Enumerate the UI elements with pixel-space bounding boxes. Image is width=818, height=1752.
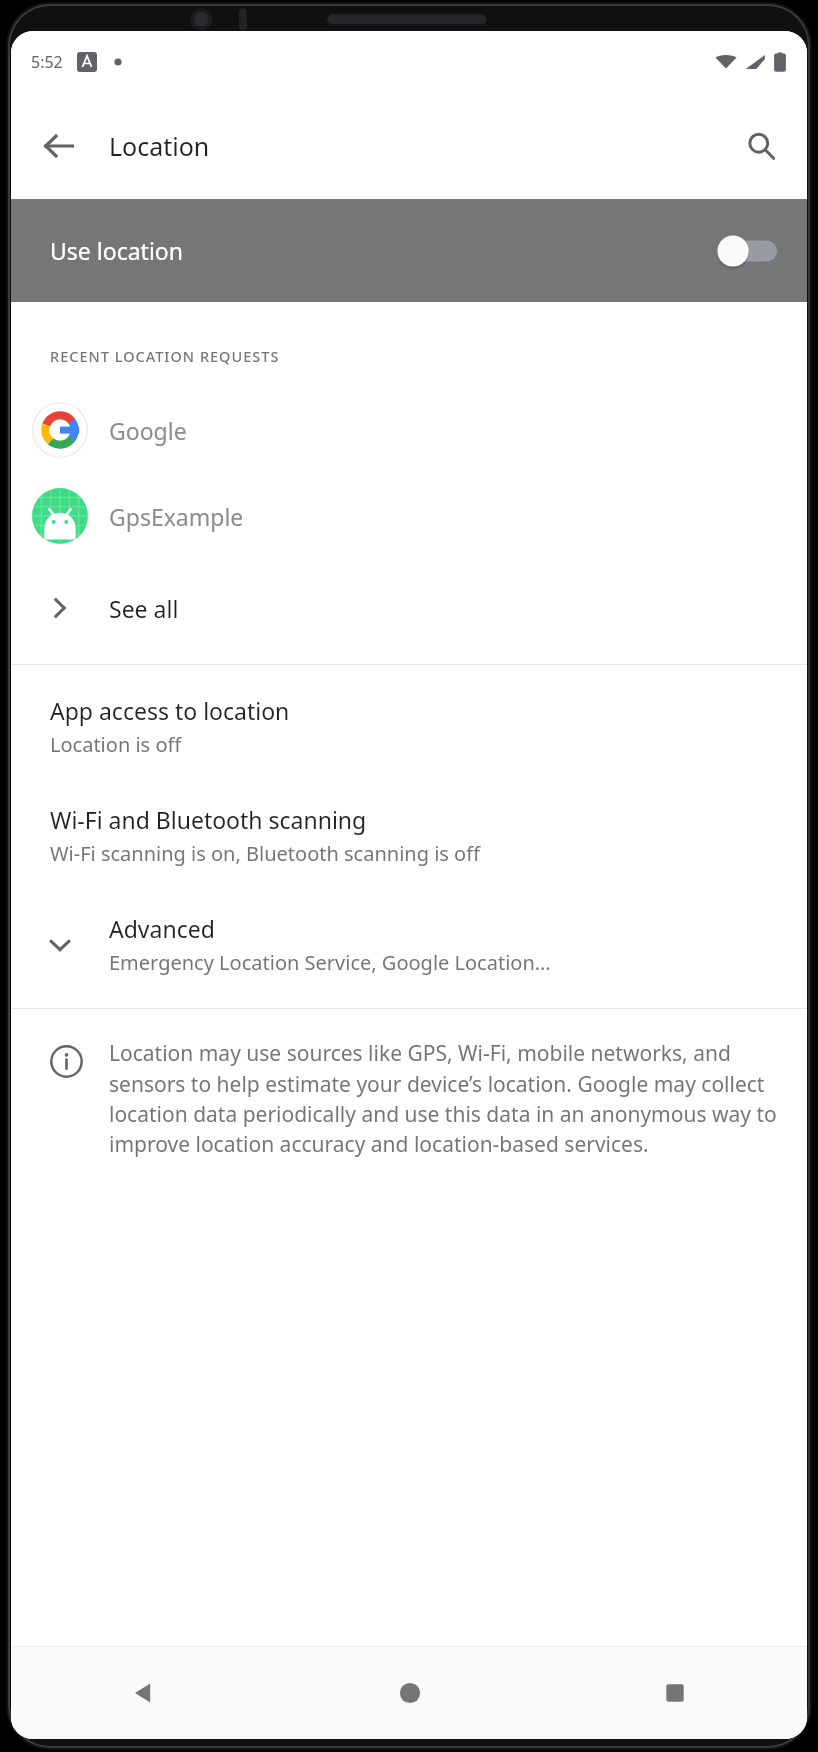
staticText: Location may use sources like GPS, Wi-Fi… xyxy=(109,1039,777,1158)
button[interactable]: Google xyxy=(11,398,807,462)
button[interactable]: Back xyxy=(11,1647,277,1739)
button[interactable]: See all xyxy=(11,572,807,644)
staticText: Location is off xyxy=(50,731,182,758)
button[interactable]: Search xyxy=(733,118,789,174)
button[interactable]: Use location xyxy=(11,199,807,302)
staticText: Location xyxy=(109,129,210,163)
button[interactable]: Recent apps xyxy=(542,1647,807,1739)
staticText: RECENT LOCATION REQUESTS xyxy=(50,346,280,366)
staticText: GpsExample xyxy=(109,501,244,532)
button[interactable]: Advanced xyxy=(11,897,807,1008)
staticText: Google xyxy=(109,415,187,446)
staticText: Use location xyxy=(50,235,183,266)
staticText: See all xyxy=(109,593,179,624)
staticText: Emergency Location Service, Google Locat… xyxy=(109,949,551,976)
staticText: Wi-Fi and Bluetooth scanning xyxy=(50,804,367,835)
button[interactable]: Wi-Fi and Bluetooth scanning xyxy=(11,788,807,897)
button[interactable]: Back xyxy=(31,118,87,174)
button[interactable]: Home xyxy=(277,1647,542,1739)
staticText: Wi-Fi scanning is on, Bluetooth scanning… xyxy=(50,840,480,867)
button[interactable]: App access to location xyxy=(11,665,807,788)
staticText: 5:52 xyxy=(31,51,63,73)
staticText: App access to location xyxy=(50,695,290,726)
staticText: Advanced xyxy=(109,913,215,944)
button[interactable]: GpsExample xyxy=(11,484,807,548)
